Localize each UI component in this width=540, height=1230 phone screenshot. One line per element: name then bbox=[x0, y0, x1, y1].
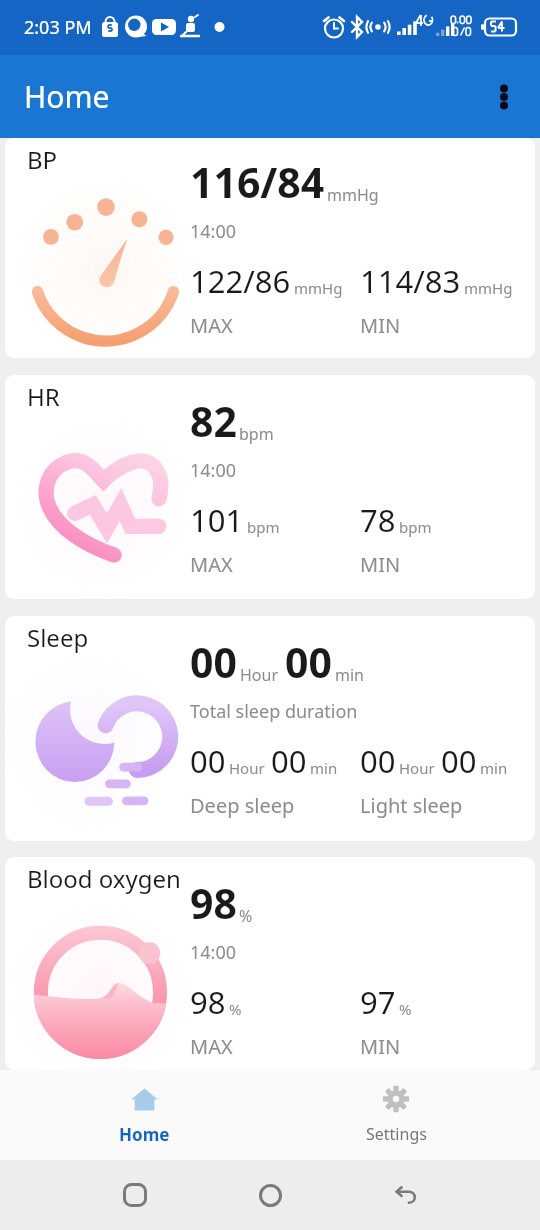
staticText: MAX bbox=[190, 551, 233, 578]
button[interactable]: Home bbox=[18, 1070, 270, 1160]
staticText: min bbox=[480, 758, 508, 778]
button[interactable]: Blood oxygen bbox=[5, 857, 535, 1070]
button[interactable]: HR bbox=[5, 375, 535, 599]
staticText: Light sleep bbox=[360, 792, 463, 819]
staticText: 114/83 bbox=[360, 260, 461, 302]
staticText: 82 bbox=[190, 393, 237, 449]
staticText: MIN bbox=[360, 1033, 401, 1060]
staticText: Total sleep duration bbox=[190, 699, 358, 724]
staticText: Sleep bbox=[27, 621, 89, 654]
staticText: 14:00 bbox=[190, 219, 237, 244]
button[interactable]: Back bbox=[381, 1171, 429, 1219]
button[interactable]: Settings bbox=[270, 1070, 522, 1160]
staticText: 97 bbox=[360, 981, 396, 1023]
staticText: Hour bbox=[240, 664, 279, 686]
button[interactable]: Sleep bbox=[5, 616, 535, 841]
staticText: bpm bbox=[247, 517, 280, 537]
staticText: 2:03 PM bbox=[24, 15, 92, 40]
staticText: % bbox=[399, 999, 412, 1019]
staticText: Deep sleep bbox=[190, 792, 295, 819]
button[interactable]: Recent apps bbox=[111, 1171, 159, 1219]
staticText: 122/86 bbox=[190, 260, 291, 302]
staticText: 00 bbox=[285, 634, 332, 690]
staticText: bpm bbox=[239, 423, 274, 445]
staticText: Home bbox=[119, 1123, 170, 1146]
staticText: % bbox=[229, 999, 242, 1019]
staticText: mmHg bbox=[327, 184, 379, 206]
staticText: MIN bbox=[360, 551, 401, 578]
staticText: 14:00 bbox=[190, 458, 237, 483]
staticText: Home bbox=[24, 76, 110, 117]
staticText: mmHg bbox=[464, 278, 513, 298]
staticText: MIN bbox=[360, 312, 401, 339]
staticText: 101 bbox=[190, 499, 244, 541]
staticText: min bbox=[310, 758, 338, 778]
staticText: Hour bbox=[229, 758, 265, 778]
staticText: bpm bbox=[399, 517, 432, 537]
staticText: BP bbox=[27, 143, 58, 176]
button[interactable]: BP bbox=[5, 138, 535, 358]
button[interactable]: More options bbox=[480, 73, 528, 121]
staticText: mmHg bbox=[294, 278, 343, 298]
staticText: Hour bbox=[399, 758, 435, 778]
staticText: MAX bbox=[190, 1033, 233, 1060]
staticText: 116/84 bbox=[190, 154, 325, 210]
button[interactable]: Home bbox=[246, 1171, 294, 1219]
staticText: MAX bbox=[190, 312, 233, 339]
staticText: 78 bbox=[360, 499, 396, 541]
staticText: 00 bbox=[190, 740, 226, 782]
staticText: % bbox=[239, 905, 253, 927]
staticText: 98 bbox=[190, 981, 226, 1023]
staticText: 98 bbox=[190, 875, 237, 931]
staticText: Blood oxygen bbox=[27, 862, 181, 895]
staticText: 00 bbox=[190, 634, 237, 690]
staticText: 00 bbox=[360, 740, 396, 782]
staticText: 14:00 bbox=[190, 940, 237, 965]
staticText: Settings bbox=[366, 1123, 427, 1145]
staticText: min bbox=[335, 664, 364, 686]
staticText: 00 bbox=[441, 740, 477, 782]
staticText: 00 bbox=[271, 740, 307, 782]
staticText: HR bbox=[27, 380, 60, 413]
